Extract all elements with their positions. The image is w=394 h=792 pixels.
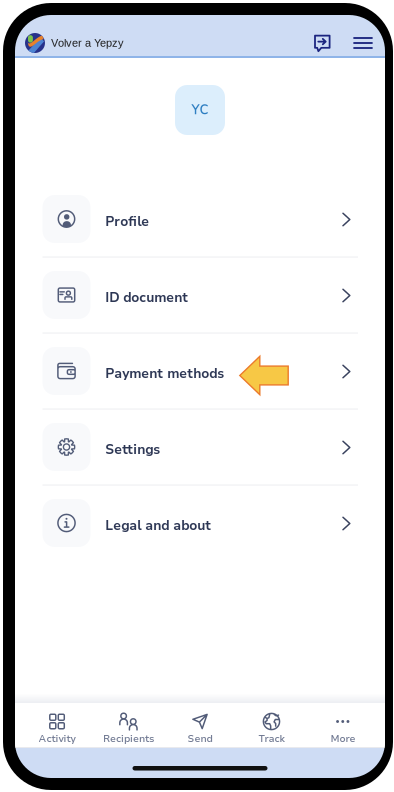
button[interactable]: ID document xyxy=(15,257,385,332)
staticText: Settings xyxy=(105,440,160,459)
staticText: Activity xyxy=(38,732,75,745)
button[interactable]: Legal and about xyxy=(15,485,385,560)
staticText: Track xyxy=(258,732,284,745)
button[interactable]: More xyxy=(307,703,379,747)
staticText: Payment methods xyxy=(105,364,224,383)
staticText: Legal and about xyxy=(105,516,211,535)
button[interactable]: Open in app xyxy=(307,30,337,56)
staticText: YC xyxy=(191,101,208,119)
staticText: ID document xyxy=(105,288,188,307)
button[interactable]: Menu xyxy=(348,30,378,56)
staticText: Volver a Yepzy xyxy=(51,37,124,49)
button[interactable]: Profile xyxy=(15,181,385,256)
button[interactable]: Send xyxy=(164,703,236,747)
staticText: Send xyxy=(187,732,212,745)
button[interactable]: Activity xyxy=(21,703,93,747)
staticText: More xyxy=(330,732,355,745)
button[interactable]: Track xyxy=(236,703,307,747)
button[interactable]: Recipients xyxy=(93,703,164,747)
button[interactable]: Payment methods xyxy=(15,333,385,408)
staticText: Recipients xyxy=(103,732,154,745)
button[interactable]: Settings xyxy=(15,409,385,484)
staticText: Profile xyxy=(105,212,149,231)
